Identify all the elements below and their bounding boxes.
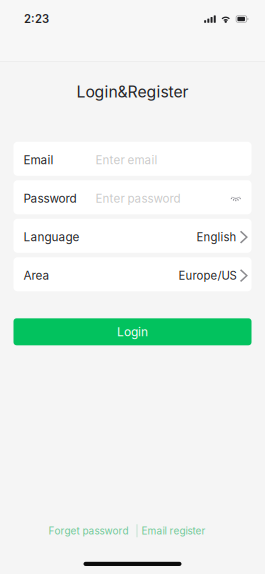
- staticText: Login: [117, 324, 148, 339]
- staticText: Area: [23, 268, 49, 283]
- staticText: Language: [23, 230, 79, 244]
- button[interactable]: Forget password: [39, 520, 136, 542]
- staticText: Forget password: [48, 525, 128, 537]
- button[interactable]: Show password: [225, 189, 242, 208]
- staticText: Email register: [141, 525, 205, 537]
- staticText: Enter email: [95, 153, 157, 167]
- staticText: Enter password: [95, 192, 180, 206]
- staticText: Email: [23, 153, 53, 167]
- staticText: Login&Register: [76, 82, 188, 101]
- button[interactable]: Login: [13, 318, 251, 345]
- staticText: Europe/US: [179, 269, 237, 282]
- button[interactable]: Area: [13, 257, 251, 291]
- button[interactable]: Language: [13, 219, 251, 253]
- staticText: English: [197, 230, 237, 244]
- staticText: Password: [23, 191, 76, 206]
- button[interactable]: Email register: [137, 520, 214, 542]
- staticText: 2:23: [24, 12, 49, 26]
